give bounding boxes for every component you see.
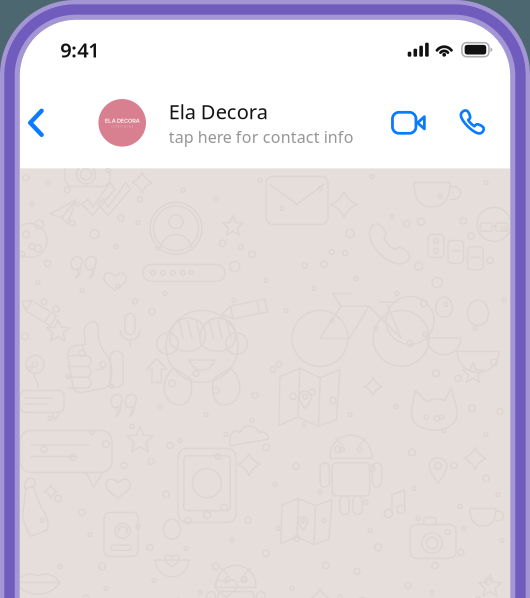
staticText: i n t e r i o r e s <box>100 126 145 134</box>
button[interactable]: Video call <box>381 92 427 154</box>
button[interactable]: Voice call <box>450 92 492 154</box>
staticText: 9:41 <box>60 36 99 63</box>
staticText: Ela Decora <box>169 98 268 125</box>
staticText: tap here for contact info <box>169 126 354 147</box>
button[interactable]: Back <box>19 92 53 154</box>
staticText: ELA DECORA <box>86 111 158 126</box>
button[interactable]: ELA DECORA <box>86 92 354 154</box>
